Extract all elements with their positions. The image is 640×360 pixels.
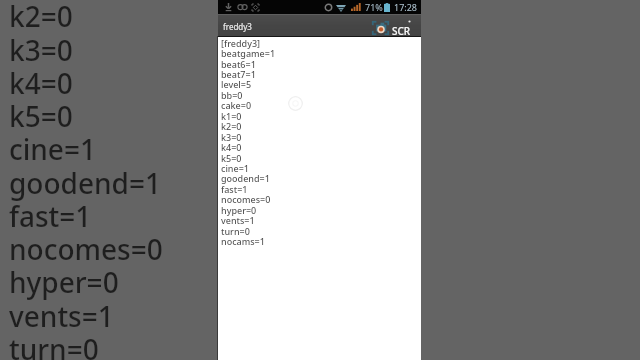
staticText: k5=0 [9, 97, 73, 135]
staticText: k2=0 [9, 0, 73, 35]
staticText: beatgame=1 [221, 47, 276, 59]
staticText: freddy3 [223, 21, 252, 32]
staticText: vents=1 [221, 214, 255, 226]
staticText: [freddy3] [221, 37, 261, 49]
staticText: bb=0 [221, 89, 243, 101]
staticText: turn=0 [221, 225, 250, 237]
staticText: k1=0 [221, 110, 242, 122]
staticText: fast=1 [9, 197, 92, 235]
staticText: fast=1 [221, 183, 248, 195]
staticText: cine=1 [9, 130, 96, 168]
staticText: k3=0 [221, 131, 242, 143]
staticText: nocomes=0 [9, 230, 163, 268]
staticText: k4=0 [221, 141, 242, 153]
staticText: SCR [392, 24, 411, 38]
staticText: hyper=0 [9, 263, 119, 301]
staticText: k3=0 [9, 31, 73, 69]
staticText: beat6=1 [221, 58, 256, 70]
staticText: vents=1 [9, 297, 114, 335]
staticText: k4=0 [9, 64, 73, 102]
staticText: goodend=1 [9, 164, 161, 202]
button[interactable]: Stop recording [288, 96, 303, 111]
staticText: 17:28 [394, 1, 418, 13]
staticText: beat7=1 [221, 68, 256, 80]
staticText: cake=0 [221, 99, 252, 111]
staticText: level=5 [221, 78, 252, 90]
button[interactable]: SCR screen recorder [370, 19, 418, 37]
staticText: cine=1 [221, 162, 249, 174]
staticText: hyper=0 [221, 204, 257, 216]
staticText: goodend=1 [221, 172, 270, 184]
staticText: nocams=1 [221, 235, 265, 247]
staticText: k2=0 [221, 120, 242, 132]
staticText: nocomes=0 [221, 193, 271, 205]
staticText: k5=0 [221, 152, 242, 164]
staticText: 71% [365, 1, 383, 13]
button[interactable]: freddy3 [218, 15, 421, 37]
staticText: turn=0 [9, 330, 99, 360]
